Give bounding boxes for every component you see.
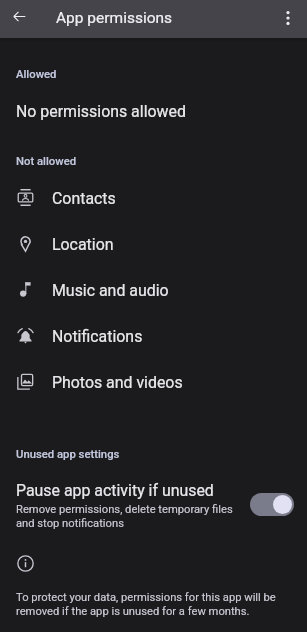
staticText: To protect your data, permissions for th… [16, 590, 293, 618]
button[interactable]: Photos and videos [0, 359, 307, 405]
button[interactable]: Music and audio [0, 267, 307, 313]
staticText: Photos and videos [52, 373, 183, 392]
button[interactable]: Notifications [0, 313, 307, 359]
staticText: No permissions allowed [16, 102, 186, 121]
button[interactable]: Pause app activity if unused [0, 481, 307, 530]
button[interactable]: Contacts [0, 175, 307, 221]
staticText: Music and audio [52, 281, 169, 300]
staticText: Not allowed [16, 155, 77, 168]
button[interactable]: More options [273, 4, 303, 34]
staticText: Pause app activity if unused [16, 481, 214, 500]
button[interactable]: Location [0, 221, 307, 267]
other: Information [17, 555, 34, 572]
button[interactable]: Pause app activity if unused toggle [250, 493, 294, 516]
staticText: Location [52, 235, 114, 254]
staticText: Unused app settings [16, 448, 120, 461]
staticText: Contacts [52, 189, 116, 208]
staticText: Remove permissions, delete temporary fil… [16, 502, 242, 530]
staticText: Notifications [52, 327, 143, 346]
button[interactable]: Back [4, 4, 34, 34]
staticText: App permissions [56, 9, 173, 27]
staticText: Allowed [16, 68, 57, 81]
